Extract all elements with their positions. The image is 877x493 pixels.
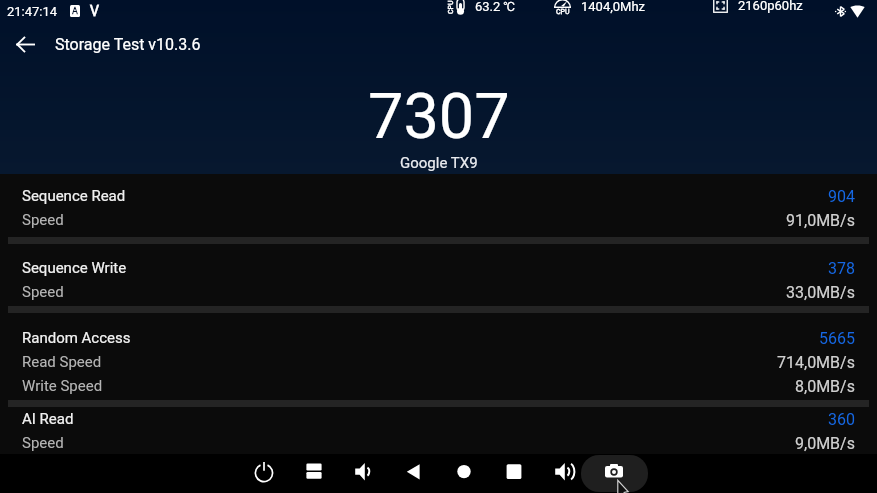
staticText: 714,0MB/s — [777, 353, 855, 372]
staticText: Speed — [22, 434, 64, 452]
staticText: V — [90, 3, 99, 19]
staticText: 904 — [828, 187, 855, 206]
staticText: Speed — [22, 283, 64, 301]
button[interactable]: Recents — [489, 453, 539, 490]
staticText: Speed — [22, 211, 64, 229]
staticText: 360 — [828, 410, 855, 429]
button[interactable]: Sequence Write — [0, 259, 877, 302]
button[interactable]: Back — [7, 26, 43, 62]
button[interactable]: Back — [389, 453, 439, 490]
staticText: 5665 — [819, 329, 855, 348]
staticText: CPU — [447, 0, 455, 14]
button[interactable]: Home — [439, 453, 489, 490]
staticText: 2160p60hz — [738, 0, 803, 13]
staticText: Sequence Write — [22, 259, 127, 277]
button[interactable]: Random Access — [0, 329, 877, 396]
staticText: 33,0MB/s — [786, 283, 855, 302]
button[interactable]: Sequence Read — [0, 187, 877, 230]
staticText: A — [72, 6, 78, 17]
staticText: 1404,0Mhz — [581, 0, 646, 14]
staticText: Storage Test v10.3.6 — [55, 35, 201, 54]
button[interactable]: Menu — [289, 453, 339, 490]
staticText: Write Speed — [22, 377, 103, 395]
button[interactable]: AI Read — [0, 410, 877, 453]
staticText: AI Read — [22, 410, 74, 428]
staticText: 21:47:14 — [7, 4, 58, 19]
staticText: Sequence Read — [22, 187, 126, 205]
button[interactable]: Volume down — [339, 453, 389, 490]
staticText: Random Access — [22, 329, 131, 347]
staticText: 8,0MB/s — [795, 377, 855, 396]
staticText: Read Speed — [22, 353, 102, 371]
button[interactable]: Power — [239, 453, 289, 490]
button[interactable]: Volume up — [539, 453, 589, 490]
staticText: 63.2 ℃ — [475, 0, 515, 14]
staticText: 9,0MB/s — [795, 434, 855, 453]
staticText: 91,0MB/s — [786, 211, 855, 230]
staticText: CPU — [556, 8, 570, 16]
button[interactable]: Screenshot — [589, 453, 639, 490]
staticText: 7307 — [368, 80, 510, 154]
staticText: Google TX9 — [400, 154, 478, 172]
staticText: 378 — [828, 259, 855, 278]
